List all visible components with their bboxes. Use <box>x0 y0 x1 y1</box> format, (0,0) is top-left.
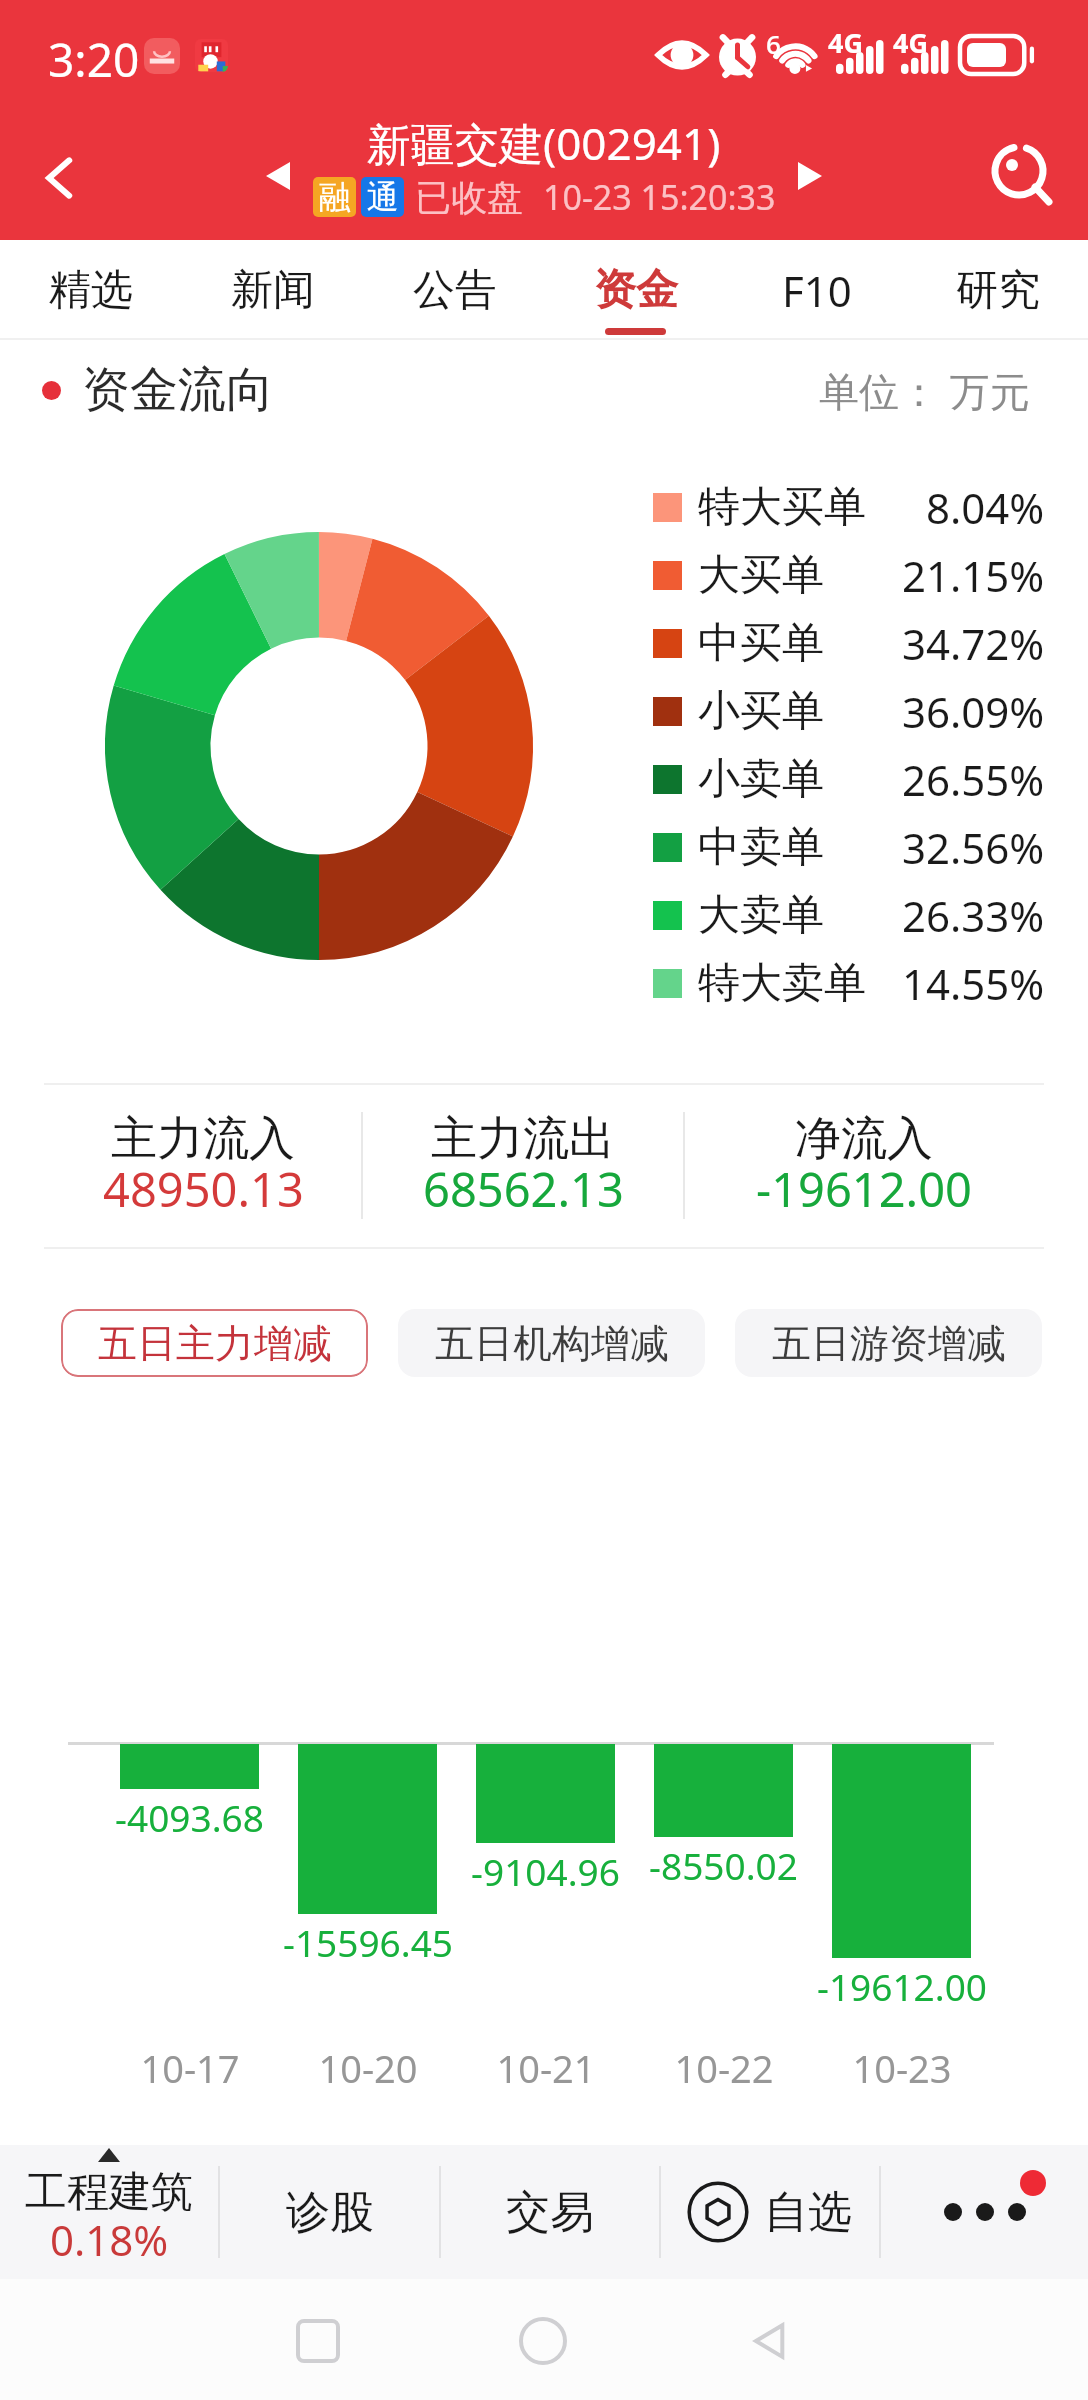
staticText: 中买单 <box>698 617 824 670</box>
staticText: 10-23 <box>852 2042 952 2094</box>
button[interactable]: Search <box>979 131 1059 211</box>
staticText: 48950.13 <box>103 1157 304 1221</box>
staticText: 五日主力增减 <box>98 1319 332 1368</box>
staticText: -9104.96 <box>471 1846 620 1896</box>
staticText: 0.18% <box>50 2211 169 2268</box>
staticText: -4093.68 <box>115 1792 264 1842</box>
staticText: -19612.00 <box>756 1157 972 1221</box>
button[interactable]: Next stock <box>780 146 840 206</box>
staticText: 自选 <box>764 2185 852 2240</box>
staticText: 单位： 万元 <box>819 363 1030 418</box>
button[interactable]: 公告 <box>364 240 545 340</box>
staticText: 34.72% <box>902 615 1045 672</box>
staticText: 10-23 15:20:33 <box>543 174 776 220</box>
staticText: 公告 <box>413 264 497 317</box>
staticText: 10-20 <box>318 2042 418 2094</box>
staticText: 精选 <box>49 264 133 317</box>
staticText: 五日游资增减 <box>772 1319 1006 1368</box>
staticText: -8550.02 <box>649 1840 798 1890</box>
button[interactable]: 交易 <box>441 2145 659 2279</box>
staticText: 融 <box>319 177 351 217</box>
button[interactable]: Previous stock <box>248 146 308 206</box>
staticText: 14.55% <box>902 955 1045 1012</box>
staticText: 21.15% <box>902 547 1045 604</box>
staticText: 10-17 <box>140 2042 240 2094</box>
staticText: 工程建筑 <box>25 2166 193 2219</box>
button[interactable]: 五日游资增减 <box>735 1309 1042 1377</box>
staticText: 已收盘 <box>415 175 523 220</box>
button[interactable]: 新闻 <box>182 240 364 340</box>
staticText: 36.09% <box>902 683 1045 740</box>
staticText: 10-21 <box>496 2042 596 2094</box>
button[interactable]: 五日主力增减 <box>61 1309 368 1377</box>
staticText: 小买单 <box>698 685 824 738</box>
staticText: 资金流向 <box>82 360 274 420</box>
button[interactable]: 诊股 <box>220 2145 439 2279</box>
staticText: 26.55% <box>902 751 1045 808</box>
staticText: 32.56% <box>902 819 1045 876</box>
staticText: 6 <box>766 26 781 61</box>
staticText: 主力流入 <box>111 1110 295 1168</box>
staticText: 净流入 <box>795 1110 933 1168</box>
button[interactable]: More options <box>881 2145 1088 2279</box>
staticText: 研究 <box>956 264 1040 317</box>
staticText: 主力流出 <box>431 1110 615 1168</box>
staticText: 中卖单 <box>698 821 824 874</box>
button[interactable]: 自选 <box>661 2145 879 2279</box>
button[interactable]: Back <box>730 2301 810 2381</box>
button[interactable]: 精选 <box>0 240 182 340</box>
staticText: 小卖单 <box>698 753 824 806</box>
staticText: 新疆交建(002941) <box>367 113 721 173</box>
staticText: 五日机构增减 <box>435 1319 669 1368</box>
staticText: 特大买单 <box>698 481 866 534</box>
staticText: 3:20 <box>48 28 140 91</box>
staticText: 大卖单 <box>698 889 824 942</box>
button[interactable]: F10 <box>726 240 907 340</box>
button[interactable]: 研究 <box>907 240 1088 340</box>
button[interactable]: 资金 <box>545 240 726 340</box>
button[interactable]: 工程建筑 <box>0 2145 218 2279</box>
staticText: 26.33% <box>902 887 1045 944</box>
button[interactable]: 五日机构增减 <box>398 1309 705 1377</box>
button[interactable]: Back <box>22 140 98 216</box>
staticText: 68562.13 <box>423 1157 624 1221</box>
staticText: 新闻 <box>231 264 315 317</box>
staticText: 8.04% <box>926 479 1045 536</box>
staticText: 大买单 <box>698 549 824 602</box>
staticText: 交易 <box>506 2185 594 2240</box>
staticText: 诊股 <box>286 2185 374 2240</box>
staticText: 4G <box>828 24 863 61</box>
staticText: 特大卖单 <box>698 957 866 1010</box>
staticText: -15596.45 <box>283 1917 453 1967</box>
staticText: 通 <box>367 177 399 217</box>
button[interactable]: Home <box>503 2301 583 2381</box>
staticText: F10 <box>782 262 852 319</box>
staticText: 4G <box>893 24 928 61</box>
staticText: -19612.00 <box>817 1961 987 2011</box>
button[interactable]: Recents <box>278 2301 358 2381</box>
staticText: 资金 <box>594 264 678 317</box>
staticText: 10-22 <box>674 2042 774 2094</box>
